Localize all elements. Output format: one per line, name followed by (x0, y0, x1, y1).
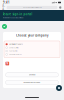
button[interactable]: Use another account (3, 80, 61, 84)
button[interactable]: Adventure Works (4, 53, 60, 56)
staticText: Northwind Traders (9, 43, 23, 45)
staticText: N (6, 62, 8, 65)
staticText: Choose your company (16, 34, 48, 37)
button[interactable]: Continue (3, 73, 61, 77)
staticText: Contoso Limited (9, 47, 19, 49)
button[interactable]: Open chat support (56, 85, 62, 91)
staticText: Secure sign-in portal (2, 12, 32, 16)
staticText: Adventure Works (9, 54, 22, 55)
staticText: Use another account (23, 82, 40, 83)
button[interactable]: Contoso Limited (4, 46, 60, 49)
button[interactable]: Northwind Traders (4, 42, 60, 46)
staticText: AA (2, 4, 5, 11)
staticText: secure.portal.example.com (22, 7, 41, 8)
staticText: 9:41 (3, 1, 10, 4)
button[interactable]: Reload page (59, 6, 62, 9)
button[interactable]: Fabrikam Inc (4, 49, 60, 53)
staticText: Pick the workspace to continue (2, 17, 23, 19)
staticText: Continue (28, 74, 35, 76)
staticText: Fabrikam Inc (9, 50, 18, 52)
button[interactable]: Page settings (2, 6, 5, 9)
